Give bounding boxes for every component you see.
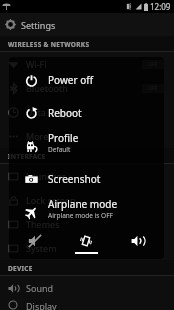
staticText: DEVICE [8, 264, 33, 273]
staticText: Themes [26, 218, 60, 230]
button[interactable]: Sound [0, 276, 174, 300]
staticText: INTERFACE [8, 152, 46, 161]
button[interactable]: Reboot [9, 96, 164, 129]
button[interactable]: Screenshot [9, 162, 164, 195]
button[interactable]: Wi-Fi [0, 52, 174, 76]
button[interactable]: Lock screen [0, 188, 174, 212]
staticText: Settings [21, 19, 56, 31]
button[interactable]: Display [0, 300, 174, 310]
staticText: Launcher [26, 170, 66, 182]
staticText: System [26, 242, 57, 254]
button[interactable]: Launcher [0, 164, 174, 188]
staticText: Screenshot [48, 172, 101, 186]
button[interactable]: Profile [9, 129, 164, 162]
staticText: OFF [148, 61, 158, 68]
staticText: WIRELESS & NETWORKS [8, 40, 90, 49]
staticText: Wi-Fi [26, 58, 47, 70]
staticText: Lock screen [26, 194, 76, 206]
button[interactable]: More... [0, 124, 174, 148]
button[interactable]: Data usage [0, 100, 174, 124]
button[interactable]: Sound mode [112, 228, 164, 259]
staticText: Default [48, 145, 71, 154]
staticText: Sound [26, 282, 54, 294]
button[interactable]: Vibrate mode [60, 228, 112, 259]
staticText: Display [26, 300, 57, 310]
button[interactable]: Silent mode [9, 228, 60, 259]
staticText: Airplane mode [48, 197, 118, 211]
staticText: Bluetooth [26, 82, 68, 94]
staticText: OFF [148, 85, 158, 92]
staticText: Data usage [26, 106, 74, 118]
staticText: More... [26, 130, 56, 142]
button[interactable]: Bluetooth [0, 76, 174, 100]
staticText: Profile [48, 131, 79, 145]
button[interactable]: System [0, 236, 174, 260]
button[interactable]: Power off [9, 63, 164, 96]
button[interactable]: Airplane mode [9, 195, 164, 228]
staticText: Reboot [48, 106, 82, 120]
staticText: 12:09 [150, 1, 171, 12]
staticText: Airplane mode is OFF [48, 211, 113, 220]
staticText: Power off [48, 73, 94, 87]
button[interactable]: Themes [0, 212, 174, 236]
button[interactable]: Settings [0, 13, 174, 36]
